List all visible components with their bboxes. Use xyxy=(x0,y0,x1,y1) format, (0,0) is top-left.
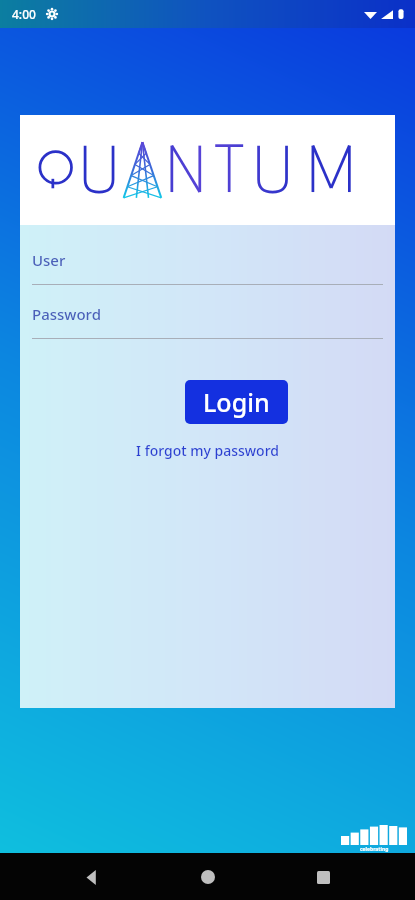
button[interactable]: Login xyxy=(185,380,288,424)
button[interactable]: Recent apps xyxy=(300,854,346,900)
staticText: I forgot my password xyxy=(136,441,279,460)
button[interactable]: Password xyxy=(20,304,395,339)
staticText: Password xyxy=(32,304,101,324)
staticText: 4:00 xyxy=(12,6,36,22)
staticText: Login xyxy=(203,385,270,419)
button[interactable]: I forgot my password xyxy=(20,438,395,463)
staticText: User xyxy=(32,250,66,270)
button[interactable]: Back xyxy=(69,854,115,900)
staticText: celebrating xyxy=(360,846,389,853)
button[interactable]: User xyxy=(20,250,395,285)
button[interactable]: Home xyxy=(185,854,231,900)
